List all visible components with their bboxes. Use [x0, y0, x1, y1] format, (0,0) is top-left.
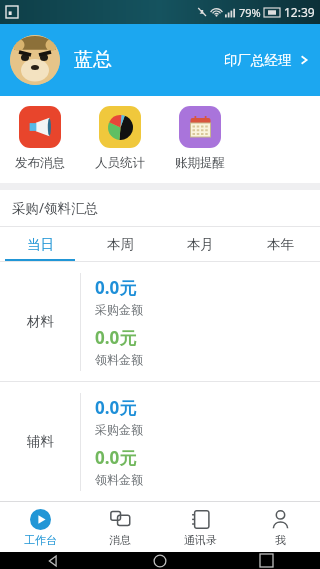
staticText: 0.0元	[95, 276, 137, 299]
staticText: 采购金额	[95, 302, 143, 317]
staticText: 领料金额	[95, 352, 143, 367]
staticText: 辅料	[27, 433, 54, 450]
staticText: 0.0元	[95, 396, 137, 419]
staticText: 本月	[187, 236, 214, 253]
button[interactable]: Home	[106, 552, 213, 569]
staticText: 发布消息	[15, 155, 65, 171]
button[interactable]: 我	[240, 502, 320, 552]
button[interactable]: 材料	[0, 262, 320, 381]
staticText: 0.0元	[95, 326, 137, 349]
staticText: 0.0元	[95, 446, 137, 469]
button[interactable]: 通讯录	[160, 502, 240, 552]
button[interactable]: Recents	[213, 552, 320, 569]
staticText: 本年	[267, 236, 294, 253]
staticText: 我	[275, 533, 286, 547]
button[interactable]: 当日	[0, 227, 80, 261]
staticText: 蓝总	[74, 48, 112, 72]
staticText: 本周	[107, 236, 134, 253]
other: 消息	[110, 509, 131, 530]
staticText: 工作台	[24, 533, 57, 547]
staticText: 采购/领料汇总	[12, 199, 99, 217]
button[interactable]: 账期提醒	[160, 106, 240, 171]
button[interactable]: 本月	[160, 227, 240, 261]
button[interactable]: 工作台	[0, 502, 80, 552]
button[interactable]: 本年	[240, 227, 320, 261]
other: 我	[270, 509, 291, 530]
button[interactable]: 发布消息	[0, 106, 80, 171]
other: 工作台	[30, 509, 51, 530]
staticText: 账期提醒	[175, 155, 225, 171]
button[interactable]: 人员统计	[80, 106, 160, 171]
button[interactable]: Back	[0, 552, 106, 569]
button[interactable]: 消息	[80, 502, 160, 552]
button[interactable]: 辅料	[0, 382, 320, 501]
other: 通讯录	[190, 509, 211, 530]
staticText: 材料	[27, 313, 54, 330]
staticText: 当日	[27, 236, 54, 253]
staticText: 采购金额	[95, 422, 143, 437]
staticText: 人员统计	[95, 155, 145, 171]
staticText: 79%	[239, 5, 261, 20]
staticText: 领料金额	[95, 472, 143, 487]
staticText: 12:39	[284, 4, 315, 20]
staticText: 印厂总经理	[224, 52, 292, 69]
staticText: 通讯录	[184, 533, 217, 547]
button[interactable]: 本周	[80, 227, 160, 261]
button[interactable]: 蓝总	[0, 24, 320, 96]
staticText: 消息	[109, 533, 131, 547]
